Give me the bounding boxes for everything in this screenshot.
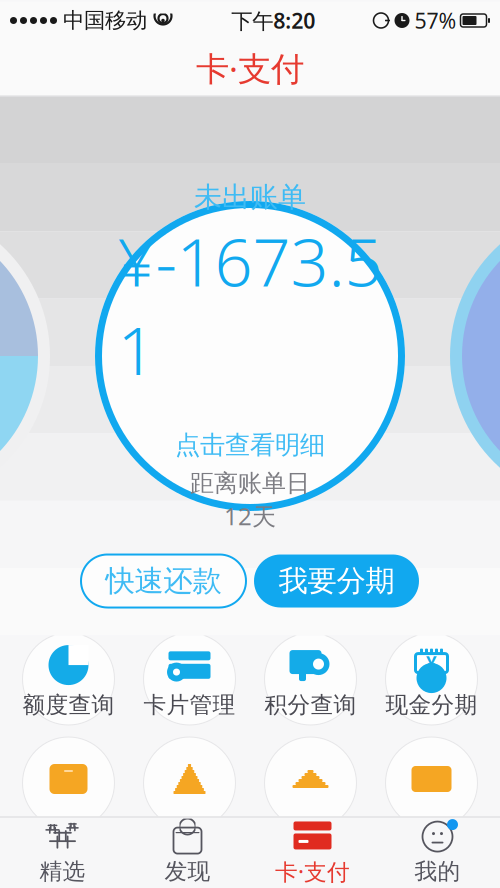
button[interactable]: 精选 bbox=[0, 816, 125, 886]
staticText: 12天 bbox=[224, 500, 276, 532]
button[interactable]: 卡·支付 bbox=[250, 816, 375, 886]
button[interactable]: 我的 bbox=[375, 816, 500, 886]
staticText: 积分查询 bbox=[264, 691, 356, 719]
staticText: 下午8:20 bbox=[231, 6, 315, 35]
button[interactable]: 额度查询 bbox=[22, 633, 114, 725]
staticText: 我要分期 bbox=[278, 563, 394, 599]
staticText: 我的 bbox=[414, 858, 460, 885]
staticText: 现金分期 bbox=[385, 691, 477, 719]
staticText: 精选 bbox=[39, 858, 85, 885]
staticText: 距离账单日 bbox=[190, 469, 310, 498]
button[interactable]: 积分查询 bbox=[264, 633, 356, 725]
staticText: 未出账单 bbox=[194, 180, 306, 214]
button[interactable]: 发现 bbox=[125, 816, 250, 886]
staticText: 快速还款 bbox=[105, 563, 221, 599]
button[interactable]: ¥ bbox=[385, 633, 477, 725]
button[interactable]: 快速还款 bbox=[81, 554, 246, 607]
staticText: 卡片管理 bbox=[143, 691, 235, 719]
button[interactable]: 卡片管理 bbox=[143, 633, 235, 725]
staticText: 额度查询 bbox=[22, 691, 114, 719]
button[interactable]: 未出账单 bbox=[95, 201, 405, 511]
staticText: 卡·支付 bbox=[275, 856, 350, 886]
staticText: 57% bbox=[414, 6, 456, 35]
staticText: 点击查看明细 bbox=[175, 429, 325, 461]
staticText: 卡·支付 bbox=[196, 46, 304, 90]
button[interactable]: 卡·支付 bbox=[0, 39, 500, 96]
staticText: 中国移动 bbox=[63, 7, 147, 34]
staticText: ¥ bbox=[426, 651, 437, 675]
button[interactable]: 我要分期 bbox=[254, 554, 419, 607]
staticText: ¥-1673.51 bbox=[117, 216, 382, 393]
staticText: 发现 bbox=[164, 858, 210, 885]
